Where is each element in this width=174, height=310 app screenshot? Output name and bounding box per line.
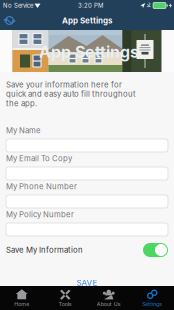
staticText: Tools bbox=[59, 301, 72, 307]
button[interactable]: Home bbox=[0, 286, 43, 310]
staticText: My Phone Number bbox=[6, 182, 77, 191]
staticText: SAVE bbox=[76, 278, 97, 288]
staticText: Save My Information bbox=[6, 245, 83, 255]
staticText: Home bbox=[14, 301, 29, 307]
button[interactable]: About Us bbox=[87, 286, 130, 310]
button[interactable]: Refresh bbox=[0, 13, 19, 28]
staticText: Settings bbox=[142, 301, 162, 307]
staticText: My Email To Copy bbox=[6, 154, 72, 163]
button[interactable]: Tools bbox=[43, 286, 87, 310]
staticText: My Policy Number bbox=[6, 210, 74, 219]
button[interactable]: Save My Information bbox=[143, 243, 168, 257]
staticText: No Service bbox=[3, 2, 33, 9]
staticText: About Us bbox=[97, 301, 121, 307]
button[interactable]: SAVE bbox=[6, 276, 168, 290]
staticText: Save your information here for quick and… bbox=[6, 80, 136, 108]
staticText: My Name bbox=[6, 126, 41, 135]
staticText: App Settings bbox=[62, 16, 112, 25]
staticText: App Settings bbox=[39, 42, 139, 62]
staticText: 3:20 PM bbox=[78, 2, 103, 9]
button[interactable]: Settings bbox=[130, 286, 174, 310]
